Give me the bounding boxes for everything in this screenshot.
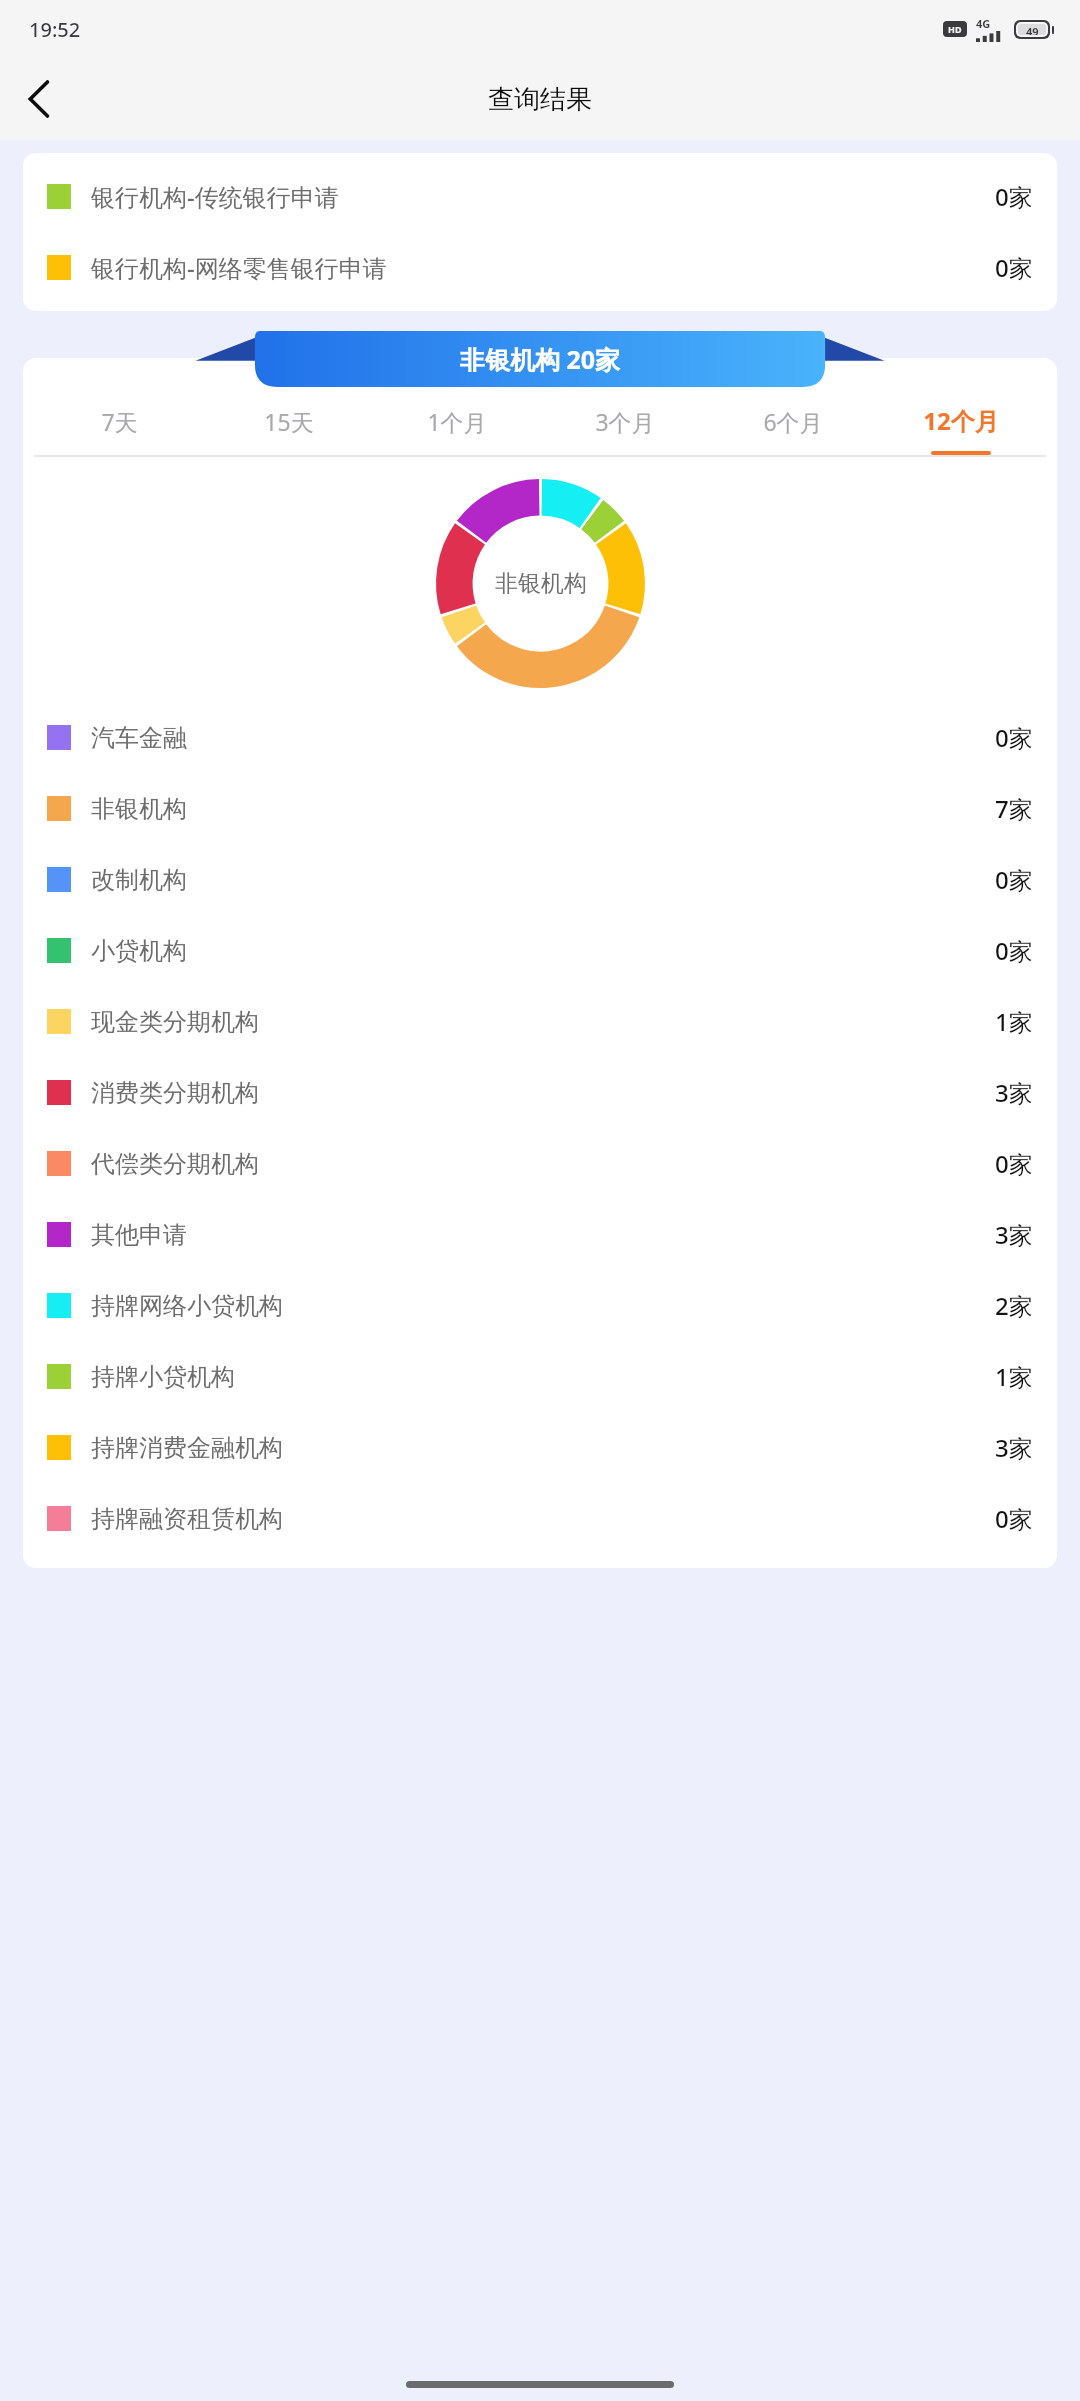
staticText: 3个月 — [595, 406, 655, 437]
staticText: 12个月 — [923, 404, 999, 437]
staticText: 持牌小贷机构 — [91, 1362, 995, 1392]
staticText: 0家 — [995, 721, 1033, 754]
staticText: 消费类分期机构 — [91, 1078, 995, 1108]
staticText: 银行机构-网络零售银行申请 — [91, 251, 995, 284]
staticText: 3家 — [995, 1218, 1033, 1251]
staticText: 0家 — [995, 863, 1033, 896]
staticText: 19:52 — [29, 16, 81, 43]
staticText: 非银机构 20家 — [460, 342, 621, 376]
button[interactable]: Back — [10, 70, 68, 128]
button[interactable]: 15天 — [204, 406, 373, 455]
button[interactable]: 小贷机构 — [23, 915, 1057, 986]
button[interactable]: 银行机构-网络零售银行申请 — [23, 232, 1057, 303]
staticText: 2家 — [995, 1289, 1033, 1322]
button[interactable]: 其他申请 — [23, 1199, 1057, 1270]
staticText: 0家 — [995, 934, 1033, 967]
staticText: 非银机构 — [495, 569, 587, 598]
staticText: HD — [948, 23, 962, 35]
button[interactable]: 银行机构-传统银行申请 — [23, 161, 1057, 232]
button[interactable]: 改制机构 — [23, 844, 1057, 915]
button[interactable]: 持牌网络小贷机构 — [23, 1270, 1057, 1341]
button[interactable]: 汽车金融 — [23, 702, 1057, 773]
staticText: 小贷机构 — [91, 936, 995, 966]
button[interactable]: 7天 — [35, 406, 204, 455]
staticText: 1家 — [995, 1005, 1033, 1038]
button[interactable]: 6个月 — [709, 406, 877, 455]
staticText: 持牌网络小贷机构 — [91, 1291, 995, 1321]
button[interactable]: 代偿类分期机构 — [23, 1128, 1057, 1199]
staticText: 15天 — [264, 406, 314, 437]
staticText: 7家 — [995, 792, 1033, 825]
staticText: 查询结果 — [488, 83, 592, 116]
button[interactable]: 持牌融资租赁机构 — [23, 1483, 1057, 1554]
button[interactable]: 消费类分期机构 — [23, 1057, 1057, 1128]
staticText: 0家 — [995, 251, 1033, 284]
button[interactable]: 非银机构 20家 — [0, 331, 1080, 387]
staticText: 现金类分期机构 — [91, 1007, 995, 1037]
staticText: 6个月 — [763, 406, 823, 437]
button[interactable]: 非银机构 — [23, 773, 1057, 844]
staticText: 其他申请 — [91, 1220, 995, 1250]
staticText: 3家 — [995, 1076, 1033, 1109]
staticText: 汽车金融 — [91, 723, 995, 753]
button[interactable]: 3个月 — [541, 406, 709, 455]
button[interactable]: 持牌小贷机构 — [23, 1341, 1057, 1412]
staticText: 改制机构 — [91, 865, 995, 895]
staticText: 0家 — [995, 1502, 1033, 1535]
button[interactable]: 持牌消费金融机构 — [23, 1412, 1057, 1483]
staticText: 1家 — [995, 1360, 1033, 1393]
staticText: 0家 — [995, 180, 1033, 213]
staticText: 持牌融资租赁机构 — [91, 1504, 995, 1534]
staticText: 非银机构 — [91, 794, 995, 824]
button[interactable]: 12个月 — [877, 404, 1045, 455]
staticText: 0家 — [995, 1147, 1033, 1180]
staticText: 7天 — [101, 406, 138, 437]
button[interactable]: 1个月 — [373, 406, 541, 455]
staticText: 代偿类分期机构 — [91, 1149, 995, 1179]
staticText: 1个月 — [427, 406, 487, 437]
staticText: 持牌消费金融机构 — [91, 1433, 995, 1463]
staticText: 银行机构-传统银行申请 — [91, 180, 995, 213]
staticText: 3家 — [995, 1431, 1033, 1464]
staticText: 49 — [1026, 24, 1039, 35]
staticText: 4G — [976, 16, 991, 31]
button[interactable]: 现金类分期机构 — [23, 986, 1057, 1057]
